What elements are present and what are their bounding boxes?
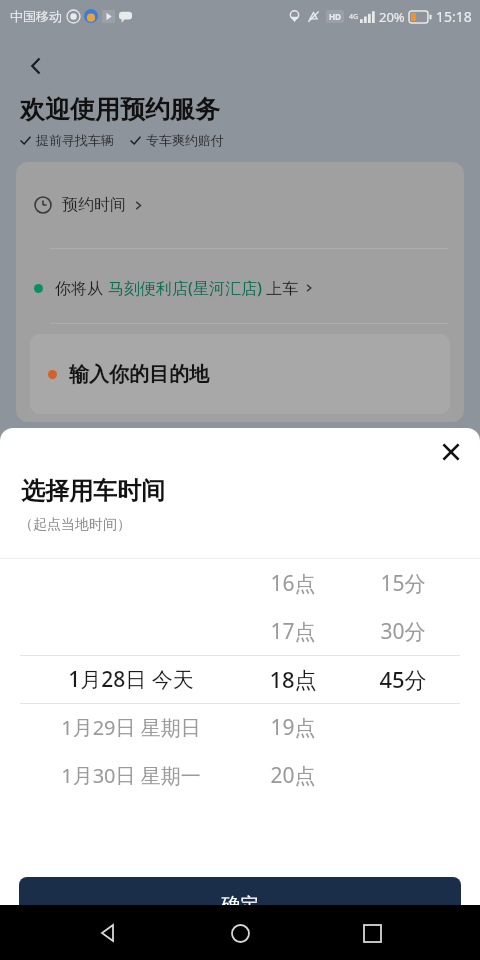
staticText: 1月30日 星期一 [61,762,201,789]
staticText: 1月28日 今天 [68,665,194,694]
staticText: 你将从 [55,277,108,299]
button[interactable]: 15分 [313,559,480,799]
staticText: 18点 [269,664,317,694]
staticText: 1月29日 星期日 [61,714,201,741]
staticText: 确定 [221,893,259,917]
button[interactable]: Home [216,909,264,957]
staticText: 上车 [262,277,299,299]
staticText: 17点 [270,617,316,646]
staticText: 中国移动 [10,8,62,24]
staticText: 预约时间 [62,195,126,215]
staticText: 15分 [380,569,426,598]
staticText: 专车爽约赔付 [146,132,224,148]
staticText: 欢迎使用预约服务 [20,94,220,125]
staticText: 15:18 [436,7,472,26]
button[interactable]: 预约时间 [16,184,464,226]
button[interactable]: Back [84,909,132,957]
button[interactable]: 输入你的目的地 [30,334,450,414]
staticText: 30分 [380,617,426,646]
staticText: 16点 [270,569,316,598]
button[interactable]: 16点 [203,559,383,799]
staticText: 20% [379,8,405,26]
staticText: （起点当地时间） [19,516,131,534]
staticText: 马刻便利店(星河汇店) [108,277,262,299]
staticText: 45分 [379,664,427,694]
staticText: 输入你的目的地 [69,362,209,387]
staticText: 提前寻找车辆 [36,132,114,148]
button[interactable]: 确定 [19,877,461,932]
button[interactable]: 1月28日 今天 [41,559,221,799]
staticText: 选择用车时间 [21,476,165,506]
staticText: 19点 [270,713,316,742]
button[interactable]: Recents [348,909,396,957]
button[interactable]: 你将从 [16,271,464,305]
staticText: HD [329,11,341,22]
staticText: 4G [349,12,359,22]
button[interactable]: Back [14,44,58,88]
button[interactable]: Close [430,431,472,473]
staticText: 20点 [270,761,316,790]
